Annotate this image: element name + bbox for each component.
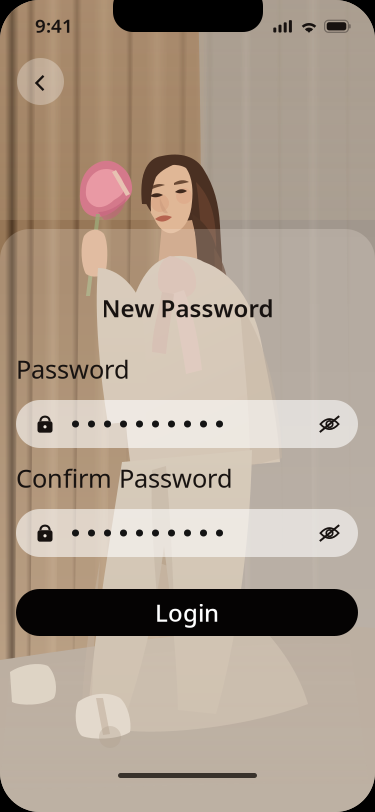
- button[interactable]: [16, 509, 358, 557]
- button[interactable]: Login: [16, 589, 358, 636]
- button[interactable]: Back: [17, 58, 64, 105]
- button[interactable]: [16, 400, 358, 448]
- staticText: Login: [155, 597, 219, 628]
- staticText: New Password: [101, 292, 273, 324]
- staticText: 9:41: [35, 13, 73, 38]
- staticText: Confirm Password: [16, 461, 233, 495]
- staticText: Password: [16, 352, 130, 386]
